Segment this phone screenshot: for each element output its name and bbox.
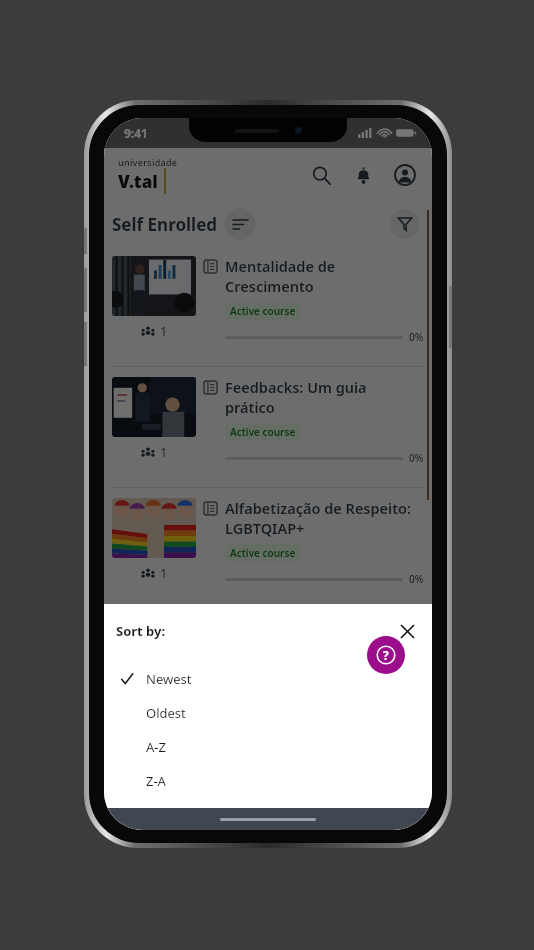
staticText: 0% [409, 330, 424, 344]
button[interactable]: Sort [224, 208, 256, 240]
button[interactable]: A-Z [104, 730, 432, 764]
staticText: Active course [230, 546, 296, 560]
button[interactable]: Oldest [104, 696, 432, 730]
button[interactable]: Search [308, 162, 334, 188]
staticText: 9:41 [124, 125, 148, 141]
button[interactable]: Newest [104, 662, 432, 696]
button[interactable]: 1 [104, 367, 432, 487]
staticText: Mentalidade de [225, 256, 336, 276]
button[interactable]: Help [367, 636, 405, 674]
staticText: Newest [146, 670, 192, 688]
staticText: LGBTQIAP+ [225, 518, 305, 538]
staticText: 0% [409, 572, 424, 586]
staticText: 1 [160, 443, 168, 461]
staticText: universidade [118, 156, 178, 168]
button[interactable]: Notifications [350, 162, 376, 188]
staticText: Active course [230, 425, 296, 439]
staticText: Active course [230, 304, 296, 318]
staticText: Oldest [146, 704, 186, 722]
staticText: 0% [409, 451, 424, 465]
staticText: 1 [160, 322, 168, 340]
staticText: Alfabetização de Respeito: [225, 498, 412, 518]
staticText: Self Enrolled [112, 213, 218, 236]
staticText: Sort by: [116, 622, 166, 640]
button[interactable]: Close [394, 618, 420, 644]
button[interactable]: 1 [104, 488, 432, 608]
staticText: Crescimento [225, 276, 314, 296]
staticText: A-Z [146, 738, 166, 756]
button[interactable]: Account [392, 162, 418, 188]
button[interactable]: 1 [104, 246, 432, 366]
button[interactable]: Z-A [104, 764, 432, 798]
button[interactable]: Filter [390, 209, 420, 239]
staticText: Z-A [146, 772, 166, 790]
staticText: V.tal [118, 170, 158, 193]
staticText: 1 [160, 564, 168, 582]
staticText: ? [383, 647, 389, 663]
staticText: prático [225, 397, 275, 417]
staticText: Feedbacks: Um guia [225, 377, 367, 397]
